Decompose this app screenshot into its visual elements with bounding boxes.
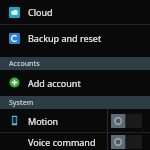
button[interactable]: Motion [0, 109, 150, 132]
staticText: Accounts [9, 59, 40, 69]
staticText: Voice command [28, 136, 107, 148]
button[interactable]: Add account [0, 70, 150, 95]
staticText: Motion [28, 115, 107, 127]
staticText: Cloud [28, 6, 53, 18]
button[interactable]: Toggle Voice command [111, 135, 142, 149]
staticText: System [9, 98, 34, 108]
button[interactable]: Backup and reset [0, 25, 150, 51]
button[interactable]: Toggle Motion [111, 114, 142, 128]
button[interactable]: Cloud [0, 0, 150, 24]
staticText: Add account [28, 77, 81, 89]
button[interactable]: Voice command [0, 133, 150, 150]
staticText: Backup and reset [28, 32, 102, 44]
